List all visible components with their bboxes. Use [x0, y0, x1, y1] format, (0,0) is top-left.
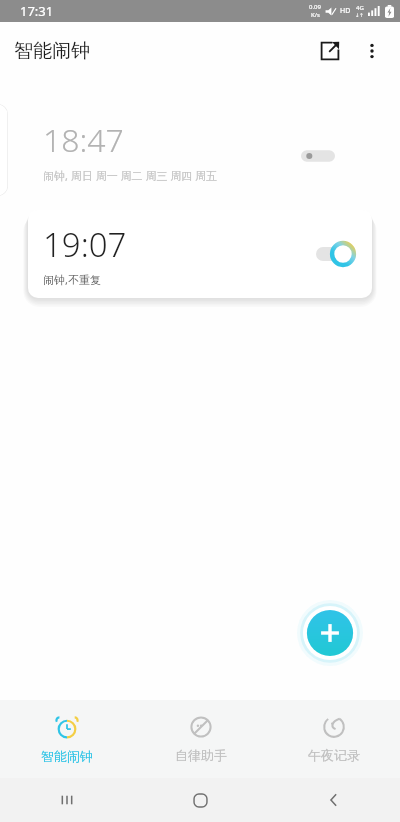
button[interactable]: 18:47	[0, 104, 400, 196]
staticText: ↓↑	[355, 12, 364, 18]
staticText: 自律助手	[175, 747, 227, 763]
button[interactable]: Alarm off	[301, 148, 335, 164]
staticText: 19:07	[43, 222, 127, 267]
button[interactable]: Alarm on	[316, 241, 356, 267]
button[interactable]: Open in new	[308, 29, 352, 73]
staticText: 智能闹钟	[41, 748, 93, 764]
button[interactable]: 19:07	[28, 210, 372, 298]
staticText: 智能闹钟	[14, 39, 90, 63]
staticText: 0.09	[309, 3, 321, 11]
staticText: 午夜记录	[308, 747, 360, 763]
button[interactable]: Recents	[0, 778, 134, 822]
button[interactable]: More options	[352, 31, 392, 71]
staticText: 闹钟,不重复	[43, 272, 101, 287]
staticText: 闹钟, 周日 周一 周二 周三 周四 周五	[43, 168, 218, 183]
staticText: 4G	[356, 4, 364, 12]
button[interactable]: Home	[134, 778, 267, 822]
button[interactable]: Back	[267, 778, 400, 822]
button[interactable]: 午夜记录	[267, 700, 400, 778]
staticText: HD	[340, 6, 351, 16]
staticText: K/s	[311, 11, 320, 19]
button[interactable]: 智能闹钟	[0, 700, 134, 778]
staticText: 17:31	[20, 2, 54, 20]
button[interactable]	[0, 104, 8, 196]
staticText: 18:47	[43, 118, 124, 162]
button[interactable]: Add alarm	[297, 600, 363, 666]
button[interactable]: 自律助手	[134, 700, 267, 778]
